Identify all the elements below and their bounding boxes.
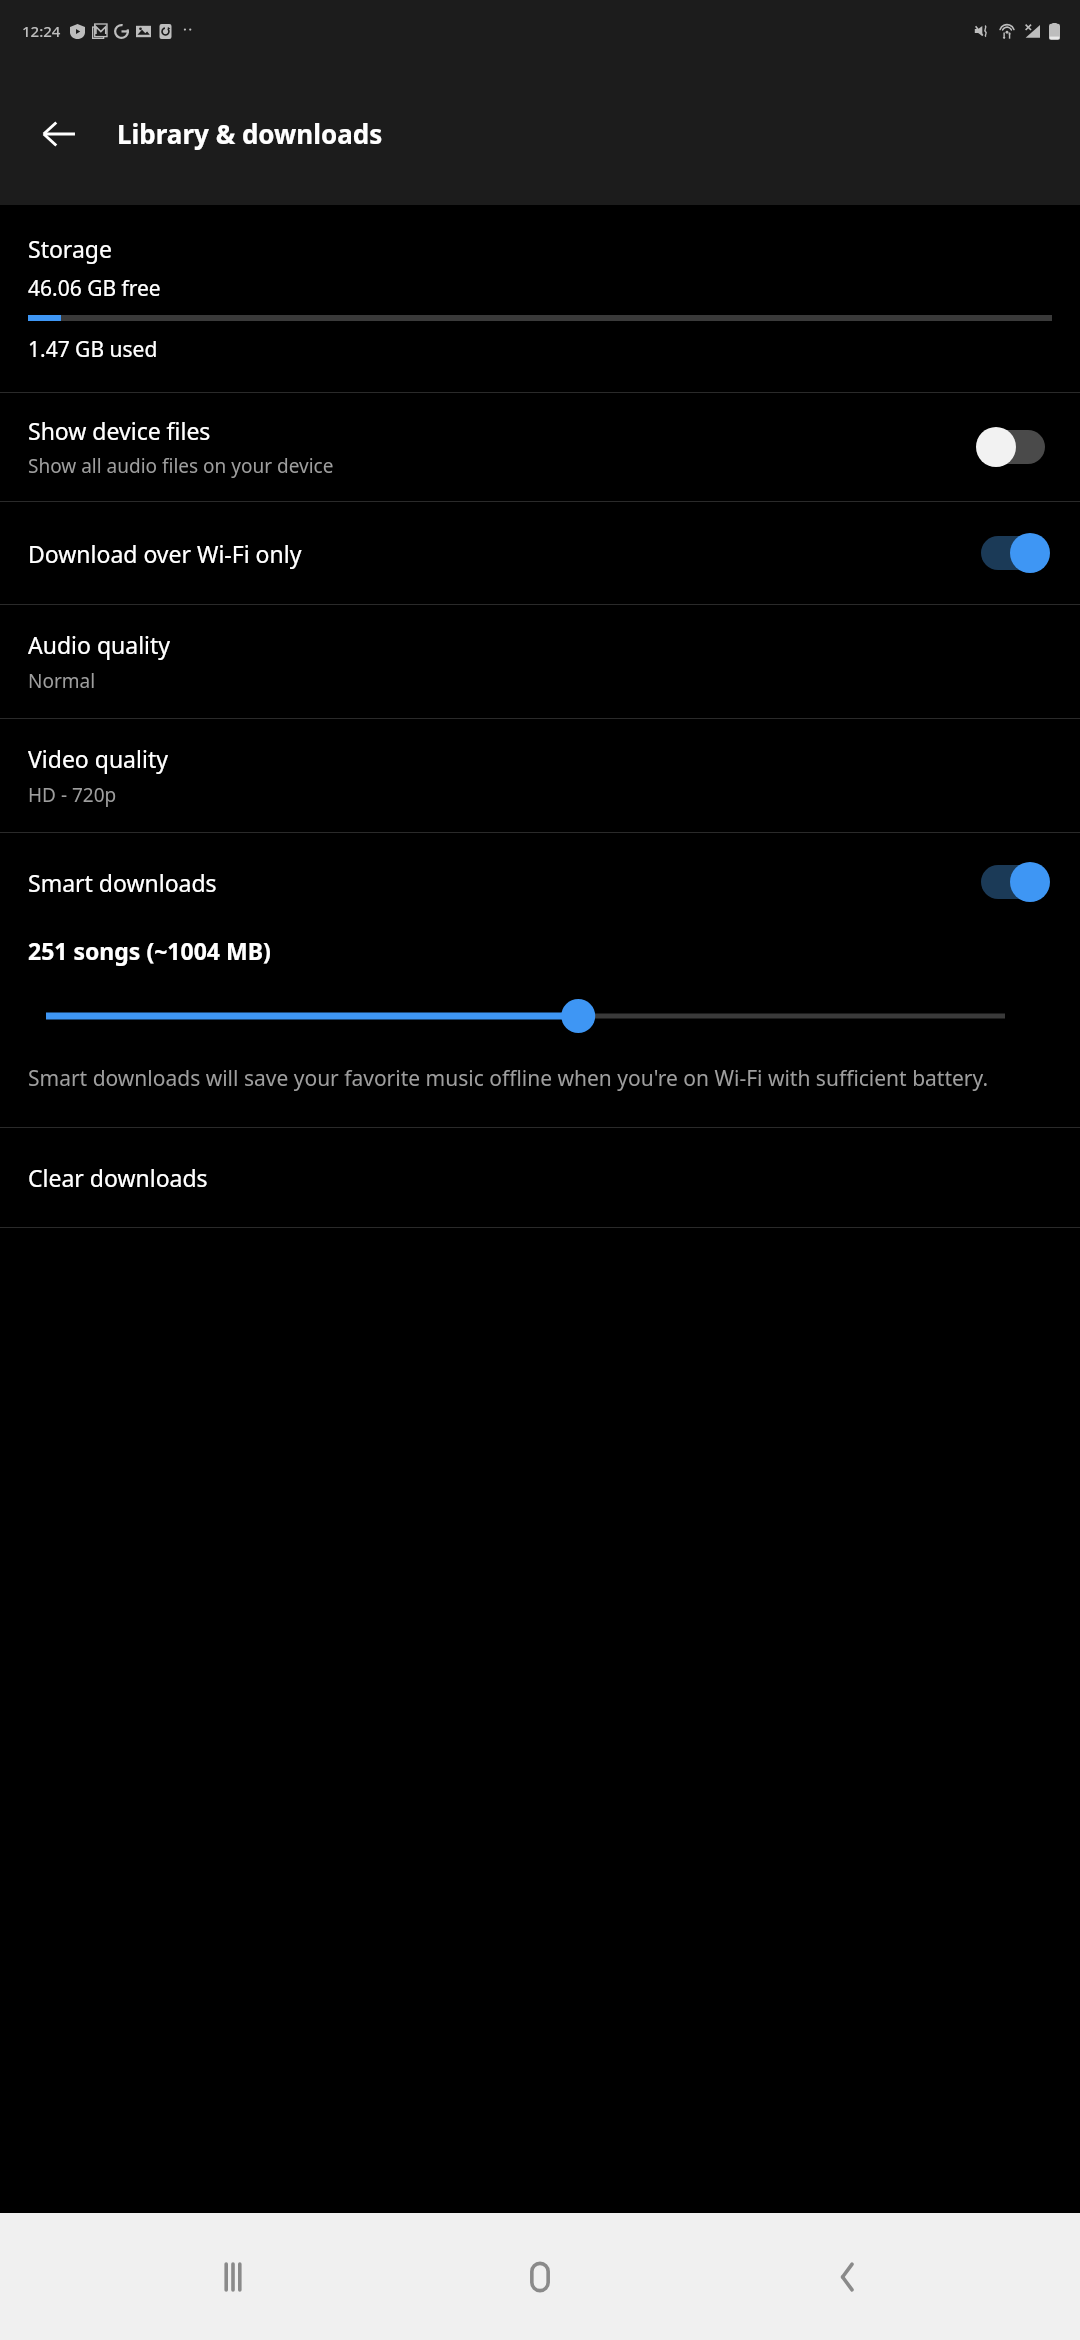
staticText: Smart downloads [28,867,974,898]
staticText: HD - 720p [28,782,117,808]
staticText: Video quality [28,743,168,774]
button[interactable]: Home [465,2213,615,2340]
staticText: Normal [28,668,96,694]
button[interactable]: Smart downloads amount [0,996,1080,1036]
button[interactable]: Video quality [0,719,1080,832]
staticText: 46.06 GB free [28,274,1052,303]
staticText: Clear downloads [28,1162,208,1193]
staticText: Show all audio files on your device [28,453,334,479]
button[interactable]: Clear downloads [0,1128,1080,1227]
staticText: Library & downloads [117,116,383,151]
staticText: Show device files [28,415,211,446]
button[interactable]: Download over Wi-Fi only [0,502,1080,604]
button[interactable]: Back [28,103,90,165]
button[interactable]: Audio quality [0,605,1080,718]
staticText: 1.47 GB used [28,335,158,364]
button[interactable]: Smart downloads [0,833,1080,931]
button[interactable]: On [974,532,1052,574]
button[interactable]: Storage [0,205,1080,392]
button[interactable]: Recents [158,2213,308,2340]
button[interactable]: Off [974,426,1052,468]
staticText: Audio quality [28,629,171,660]
button[interactable]: Back [773,2213,923,2340]
button[interactable]: Show device files [0,393,1080,501]
staticText: Download over Wi-Fi only [28,538,302,569]
staticText: 251 songs (~1004 MB) [28,935,271,966]
button[interactable]: On [974,861,1052,903]
staticText: Storage [28,233,112,264]
staticText: Smart downloads will save your favorite … [28,1064,989,1093]
staticText: 12:24 [22,21,61,41]
